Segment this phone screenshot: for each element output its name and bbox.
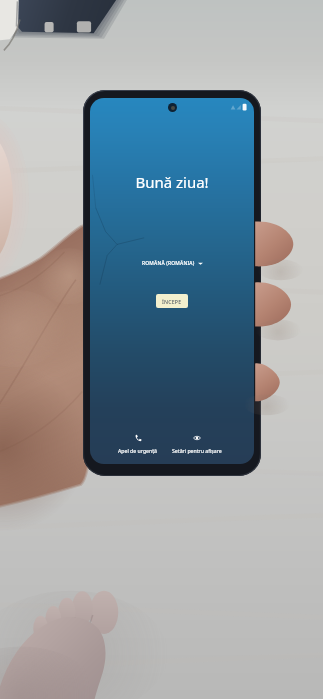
button[interactable]: ROMÂNĂ (ROMÂNIA): [136, 257, 209, 270]
button[interactable]: Display settings: [169, 432, 225, 456]
staticText: Bună ziua!: [135, 172, 209, 192]
staticText: Apel de urgență: [118, 447, 157, 454]
staticText: ROMÂNĂ (ROMÂNIA): [142, 260, 195, 267]
staticText: Setări pentru afișare: [172, 447, 222, 454]
button[interactable]: Emergency call: [115, 432, 160, 456]
staticText: ÎNCEPE: [162, 298, 182, 305]
button[interactable]: ÎNCEPE: [156, 294, 188, 308]
